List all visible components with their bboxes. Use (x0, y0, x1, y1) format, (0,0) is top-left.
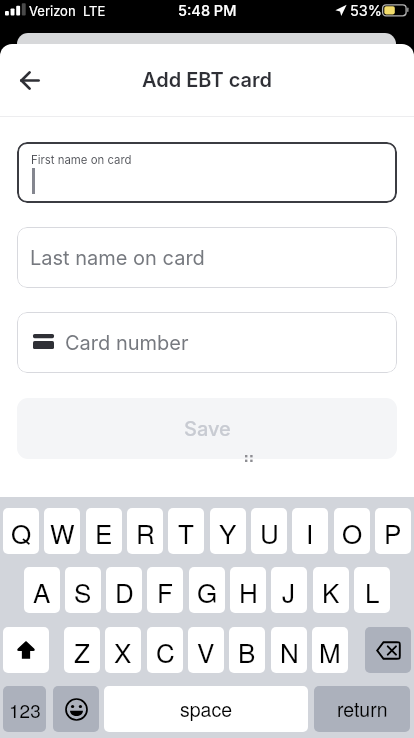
staticText: H (239, 573, 258, 610)
button[interactable]: M (312, 627, 348, 673)
button[interactable]: space (104, 686, 308, 732)
staticText: U (260, 514, 279, 551)
staticText: Add EBT card (142, 68, 272, 92)
staticText: Verizon (29, 3, 76, 19)
staticText: R (136, 514, 155, 551)
staticText: N (280, 633, 299, 670)
staticText: S (74, 573, 92, 610)
staticText: X (114, 633, 132, 670)
staticText: K (322, 573, 340, 610)
staticText: F (157, 573, 173, 610)
staticText: D (115, 573, 134, 610)
button[interactable]: H (230, 567, 266, 613)
staticText: W (50, 514, 75, 551)
button[interactable]: N (271, 627, 307, 673)
button[interactable]: G (189, 567, 225, 613)
button[interactable]: L (354, 567, 390, 613)
button[interactable]: B (229, 627, 265, 673)
button[interactable]: F (147, 567, 183, 613)
button[interactable]: Z (64, 627, 100, 673)
button[interactable]: O (334, 508, 370, 554)
staticText: O (342, 514, 363, 551)
staticText: P (384, 514, 402, 551)
button[interactable]: X (105, 627, 141, 673)
button[interactable]: J (271, 567, 307, 613)
button[interactable]: V (188, 627, 224, 673)
staticText: I (306, 514, 314, 551)
button[interactable]: D (106, 567, 142, 613)
button[interactable]: Card number (17, 312, 397, 373)
button[interactable]: return (314, 686, 410, 732)
staticText: E (95, 514, 113, 551)
button[interactable]: A (24, 567, 60, 613)
button[interactable]: E (86, 508, 122, 554)
button[interactable]: K (313, 567, 349, 613)
button[interactable]: Save (17, 398, 397, 459)
button[interactable]: Emoji (53, 686, 99, 732)
button[interactable]: I (292, 508, 328, 554)
staticText: Q (11, 514, 32, 551)
staticText: First name on card (31, 153, 132, 167)
staticText: 123 (9, 696, 41, 723)
button[interactable]: Backspace (365, 627, 411, 673)
staticText: Z (74, 633, 90, 670)
button[interactable]: Y (210, 508, 246, 554)
button[interactable]: C (147, 627, 183, 673)
button[interactable]: W (44, 508, 80, 554)
staticText: G (197, 573, 218, 610)
staticText: A (33, 573, 51, 610)
button[interactable]: Q (3, 508, 39, 554)
button[interactable]: Back (8, 58, 52, 102)
button[interactable]: Shift (3, 627, 49, 673)
staticText: 53% (350, 2, 383, 20)
staticText: Last name on card (30, 246, 205, 270)
staticText: B (238, 633, 256, 670)
staticText: return (337, 695, 388, 723)
staticText: Save (184, 417, 231, 441)
button[interactable]: 123 (3, 686, 46, 732)
staticText: T (178, 514, 194, 551)
button[interactable]: First name on card (17, 142, 397, 203)
staticText: J (282, 573, 296, 610)
button[interactable]: T (168, 508, 204, 554)
staticText: M (319, 633, 341, 670)
button[interactable]: R (127, 508, 163, 554)
staticText: Card number (65, 331, 189, 355)
button[interactable]: Last name on card (17, 227, 397, 288)
staticText: L (365, 573, 380, 610)
button[interactable]: S (65, 567, 101, 613)
button[interactable]: P (375, 508, 411, 554)
staticText: space (180, 695, 233, 723)
staticText: V (197, 633, 215, 670)
staticText: 5:48 PM (178, 2, 237, 20)
staticText: Y (219, 514, 237, 551)
button[interactable]: U (251, 508, 287, 554)
staticText: C (156, 633, 175, 670)
staticText: LTE (83, 3, 106, 19)
